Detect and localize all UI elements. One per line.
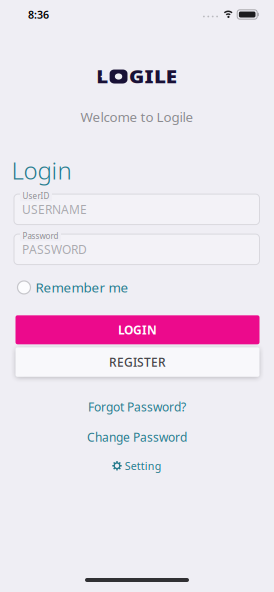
button[interactable]: Remember me <box>0 279 274 296</box>
staticText: USERNAME <box>22 201 87 217</box>
staticText: Password <box>22 231 58 241</box>
staticText: Login <box>11 154 71 186</box>
staticText: Remember me <box>35 279 128 296</box>
staticText: Forgot Password? <box>88 399 186 415</box>
staticText: 8:36 <box>28 7 49 22</box>
staticText: Setting <box>125 459 162 473</box>
staticText: Change Password <box>87 429 187 445</box>
staticText: UserID <box>22 191 49 201</box>
button[interactable]: LOGIN <box>0 315 274 344</box>
staticText: LOGIN <box>118 322 157 338</box>
staticText: PASSWORD <box>22 241 87 257</box>
button[interactable]: REGISTER <box>0 347 274 377</box>
button[interactable]: Forgot Password? <box>88 399 186 415</box>
button[interactable]: Setting <box>112 459 162 473</box>
button[interactable]: Change Password <box>87 429 187 445</box>
staticText: GILE <box>130 65 171 88</box>
staticText: L <box>103 65 113 88</box>
staticText: Welcome to Logile <box>80 108 193 126</box>
staticText: REGISTER <box>109 354 166 370</box>
